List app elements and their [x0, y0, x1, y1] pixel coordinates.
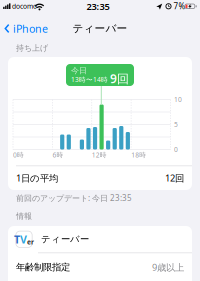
- staticText: 持ち上げ: [16, 43, 48, 53]
- staticText: 23:35: [86, 0, 109, 13]
- button[interactable]: T: [8, 226, 192, 252]
- staticText: 情報: [16, 211, 32, 221]
- staticText: 6時: [52, 150, 63, 159]
- button[interactable]: 年齢制限指定: [8, 253, 192, 281]
- staticText: 9回: [110, 70, 129, 86]
- button[interactable]: Back: [4, 22, 48, 35]
- staticText: V: [20, 232, 27, 246]
- staticText: 5: [174, 120, 178, 129]
- staticText: ティーバー: [41, 233, 89, 245]
- staticText: 0: [174, 145, 178, 154]
- staticText: 年齢制限指定: [16, 261, 70, 273]
- staticText: 13時〜14時: [71, 75, 108, 84]
- staticText: 1日の平均: [16, 172, 58, 184]
- staticText: 前回のアップデート: 今日 23:35: [16, 193, 132, 203]
- staticText: 0時: [13, 150, 24, 159]
- staticText: 18時: [131, 150, 146, 159]
- staticText: 7%: [173, 1, 185, 11]
- staticText: 10: [174, 95, 182, 104]
- staticText: docomo: [12, 2, 37, 11]
- staticText: 12時: [92, 150, 107, 159]
- staticText: 12回: [165, 172, 184, 184]
- staticText: T: [14, 232, 20, 246]
- staticText: 9歳以上: [152, 261, 184, 273]
- staticText: er: [27, 237, 34, 246]
- staticText: 今日: [71, 66, 87, 75]
- staticText: iPhone: [13, 21, 48, 36]
- staticText: ティーバー: [72, 22, 127, 35]
